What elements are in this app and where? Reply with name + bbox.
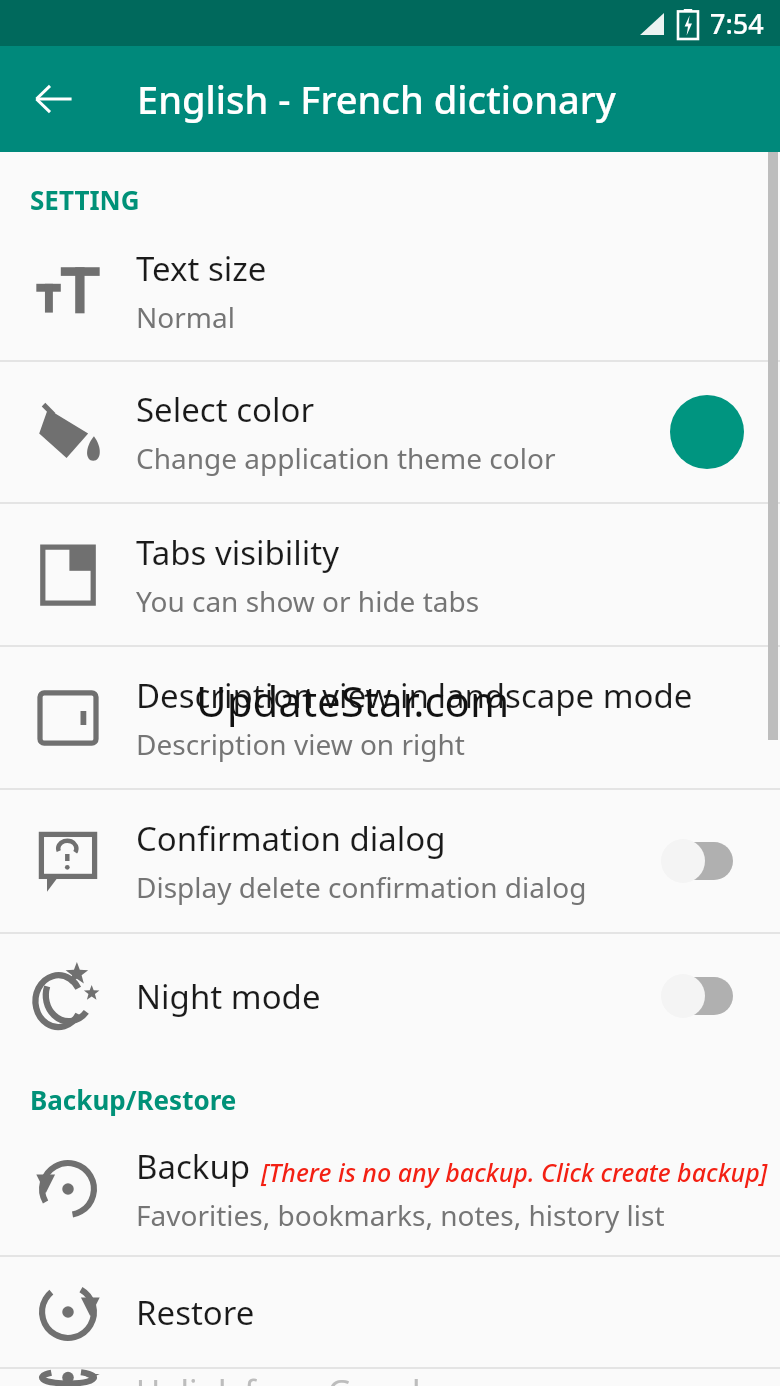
staticText: UpdateStar.com <box>196 672 510 729</box>
button[interactable]: Backup <box>0 1123 780 1255</box>
staticText: [There is no any backup. Click create ba… <box>261 1155 768 1189</box>
button[interactable]: Tabs visibility <box>0 504 780 645</box>
staticText: Night mode <box>136 974 321 1019</box>
staticText: SETTING <box>30 182 140 217</box>
button[interactable]: Text size <box>0 221 780 360</box>
staticText: Normal <box>136 298 235 336</box>
staticText: Restore <box>136 1290 255 1335</box>
staticText: Backup/Restore <box>30 1082 237 1117</box>
button[interactable]: Toggle <box>659 831 755 891</box>
staticText: 7:54 <box>710 5 764 42</box>
button[interactable]: Confirmation dialog <box>0 790 780 932</box>
button[interactable]: Toggle <box>659 966 755 1026</box>
button[interactable]: Select color <box>0 362 780 502</box>
button[interactable]: Back <box>22 67 86 131</box>
staticText: Select color <box>136 387 315 432</box>
button[interactable]: Night mode <box>0 934 780 1058</box>
button[interactable]: Unlink from Google <box>0 1369 780 1386</box>
staticText: English - French dictionary <box>137 73 616 125</box>
staticText: You can show or hide tabs <box>136 582 480 620</box>
staticText: Display delete confirmation dialog <box>136 868 587 906</box>
staticText: Description view on right <box>136 725 465 763</box>
staticText: Description view in landscape mode <box>136 673 693 718</box>
button[interactable]: Description view in landscape mode <box>0 647 780 788</box>
staticText: Unlink from Google <box>136 1369 440 1386</box>
staticText: Favorities, bookmarks, notes, history li… <box>136 1196 665 1234</box>
staticText: Text size <box>136 246 267 291</box>
staticText: Change application theme color <box>136 439 556 477</box>
staticText: Tabs visibility <box>136 530 340 575</box>
staticText: Confirmation dialog <box>136 816 446 861</box>
staticText: Backup <box>136 1144 251 1189</box>
button[interactable]: Restore <box>0 1257 780 1367</box>
